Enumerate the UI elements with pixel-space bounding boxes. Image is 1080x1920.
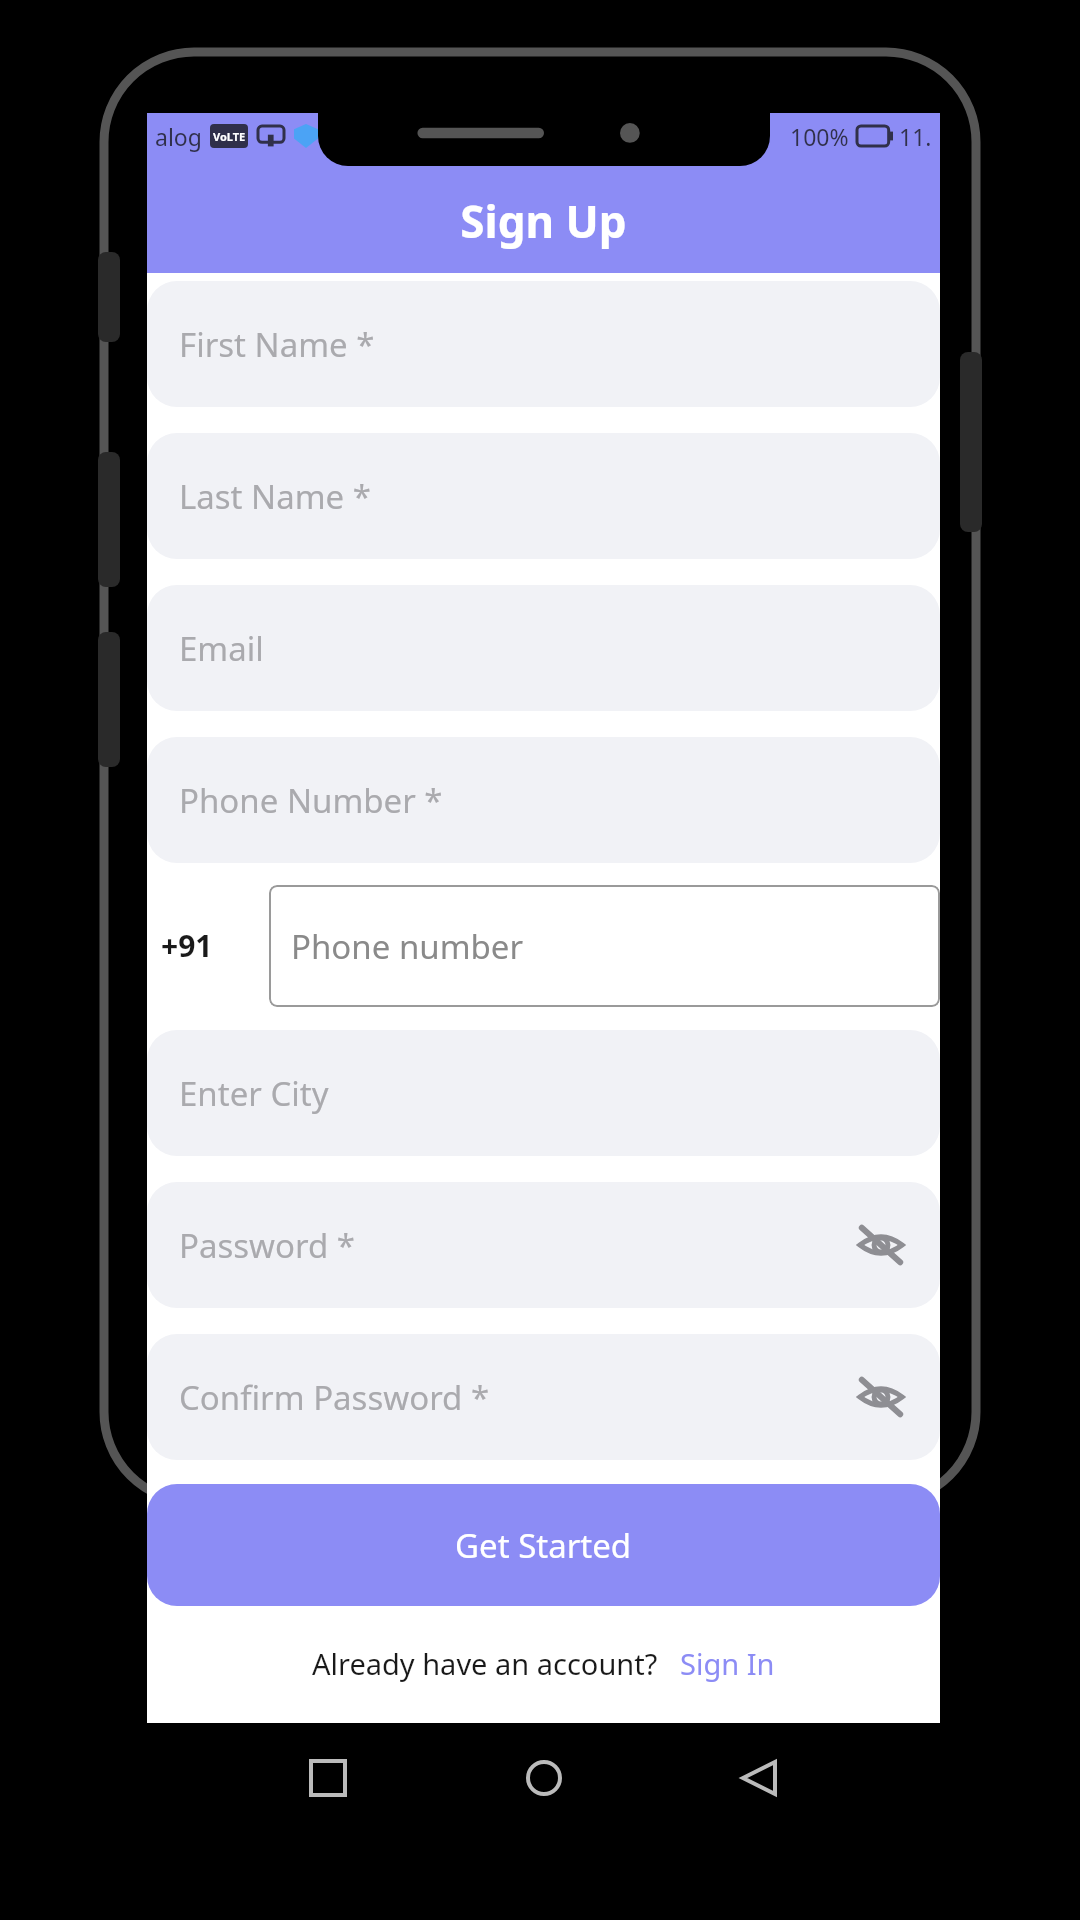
staticText: Phone Number *	[179, 778, 443, 823]
staticText: Enter City	[179, 1071, 329, 1116]
button[interactable]: Show password	[848, 1212, 914, 1278]
button[interactable]: Enter City	[147, 1030, 940, 1156]
button[interactable]: Email	[147, 585, 940, 711]
staticText: Already have an account?	[312, 1644, 658, 1683]
button[interactable]: Get Started	[147, 1484, 940, 1606]
staticText: Confirm Password *	[179, 1375, 490, 1420]
button[interactable]: Show confirm password	[848, 1364, 914, 1430]
button[interactable]: Password *	[147, 1182, 940, 1308]
staticText: Sign Up	[460, 191, 627, 251]
button[interactable]: Phone number	[269, 885, 940, 1007]
button[interactable]: Home	[509, 1743, 579, 1813]
staticText: alog	[155, 121, 202, 152]
staticText: VoLTE	[213, 129, 246, 144]
button[interactable]: Recent apps	[293, 1743, 363, 1813]
staticText: Phone number	[291, 924, 524, 969]
button[interactable]: Sign In	[680, 1644, 775, 1683]
staticText: +91	[161, 925, 213, 966]
button[interactable]: Confirm Password *	[147, 1334, 940, 1460]
button[interactable]: Phone Number *	[147, 737, 940, 863]
staticText: First Name *	[179, 322, 375, 367]
staticText: 11.	[899, 121, 932, 152]
staticText: Password *	[179, 1223, 356, 1268]
button[interactable]: Back	[724, 1743, 794, 1813]
staticText: Last Name *	[179, 474, 371, 519]
staticText: Sign In	[680, 1644, 775, 1683]
button[interactable]: First Name *	[147, 281, 940, 407]
staticText: Email	[179, 626, 264, 671]
button[interactable]: Last Name *	[147, 433, 940, 559]
staticText: 100%	[790, 121, 849, 152]
staticText: Get Started	[455, 1523, 632, 1568]
